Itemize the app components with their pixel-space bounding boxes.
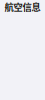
staticText: 航空信息 <box>4 0 40 13</box>
